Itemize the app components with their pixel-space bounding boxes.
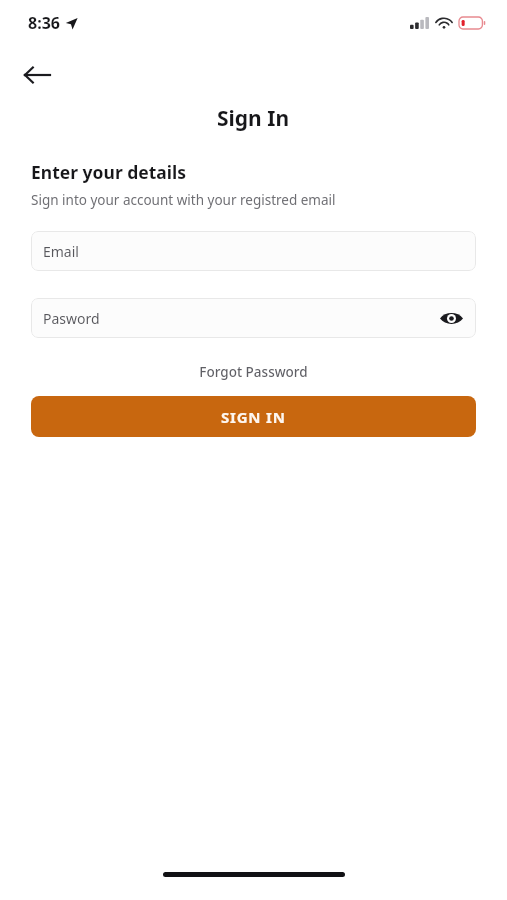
button[interactable]: Show password: [436, 303, 466, 333]
staticText: Email: [43, 242, 79, 261]
staticText: 8:36: [28, 12, 60, 34]
button[interactable]: SIGN IN: [31, 396, 476, 437]
staticText: Enter your details: [31, 160, 187, 184]
staticText: Sign In: [217, 104, 290, 133]
button[interactable]: Email: [31, 231, 476, 271]
staticText: SIGN IN: [221, 407, 286, 427]
button[interactable]: Forgot Password: [191, 360, 316, 384]
staticText: Forgot Password: [199, 363, 308, 381]
staticText: Pasword: [43, 309, 100, 328]
button[interactable]: Back: [14, 52, 60, 98]
staticText: Sign into your account with your registr…: [31, 191, 336, 209]
button[interactable]: Pasword: [31, 298, 476, 338]
